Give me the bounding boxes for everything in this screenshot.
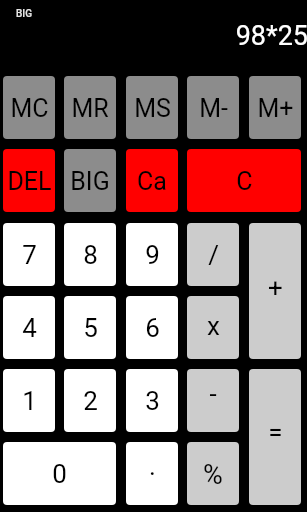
button[interactable]: 4 — [3, 296, 55, 359]
staticText: M- — [199, 94, 228, 123]
staticText: + — [268, 273, 283, 303]
button[interactable]: 8 — [64, 223, 116, 286]
staticText: 5 — [83, 313, 98, 343]
staticText: 0 — [52, 459, 67, 489]
staticText: 9 — [145, 240, 160, 270]
button[interactable]: . — [126, 442, 178, 505]
button[interactable]: % — [187, 442, 239, 505]
staticText: MR — [71, 94, 109, 123]
button[interactable]: + — [249, 223, 301, 359]
button[interactable]: M- — [187, 76, 239, 139]
staticText: BIG — [70, 167, 110, 196]
staticText: . — [149, 451, 156, 481]
staticText: MS — [134, 94, 171, 123]
button[interactable]: MS — [126, 76, 178, 139]
staticText: / — [208, 240, 219, 270]
staticText: BIG — [16, 8, 32, 20]
staticText: 8 — [83, 240, 98, 270]
button[interactable]: Ca — [126, 149, 178, 212]
button[interactable]: BIG — [64, 149, 116, 212]
button[interactable]: 6 — [126, 296, 178, 359]
button[interactable]: C — [187, 149, 301, 212]
button[interactable]: / — [187, 223, 239, 286]
staticText: 1 — [22, 386, 37, 416]
staticText: % — [203, 459, 223, 491]
staticText: - — [209, 379, 217, 409]
staticText: 98*25 — [2, 20, 307, 52]
button[interactable]: 1 — [3, 369, 55, 432]
staticText: DEL — [7, 167, 52, 196]
staticText: x — [207, 311, 220, 341]
button[interactable]: 7 — [3, 223, 55, 286]
button[interactable]: DEL — [3, 149, 55, 212]
staticText: C — [236, 167, 253, 196]
staticText: MC — [10, 94, 49, 123]
staticText: M+ — [257, 94, 294, 123]
button[interactable]: 9 — [126, 223, 178, 286]
staticText: = — [268, 417, 283, 447]
button[interactable]: 2 — [64, 369, 116, 432]
staticText: 2 — [83, 386, 98, 416]
button[interactable]: - — [187, 369, 239, 432]
staticText: 3 — [145, 386, 160, 416]
button[interactable]: 5 — [64, 296, 116, 359]
staticText: 7 — [22, 240, 37, 270]
staticText: 4 — [22, 313, 37, 343]
button[interactable]: 0 — [3, 442, 116, 505]
staticText: 6 — [145, 313, 160, 343]
button[interactable]: M+ — [249, 76, 301, 139]
button[interactable]: x — [187, 296, 239, 359]
button[interactable]: 3 — [126, 369, 178, 432]
button[interactable]: = — [249, 369, 301, 505]
staticText: Ca — [137, 167, 167, 196]
button[interactable]: MC — [3, 76, 55, 139]
button[interactable]: MR — [64, 76, 116, 139]
